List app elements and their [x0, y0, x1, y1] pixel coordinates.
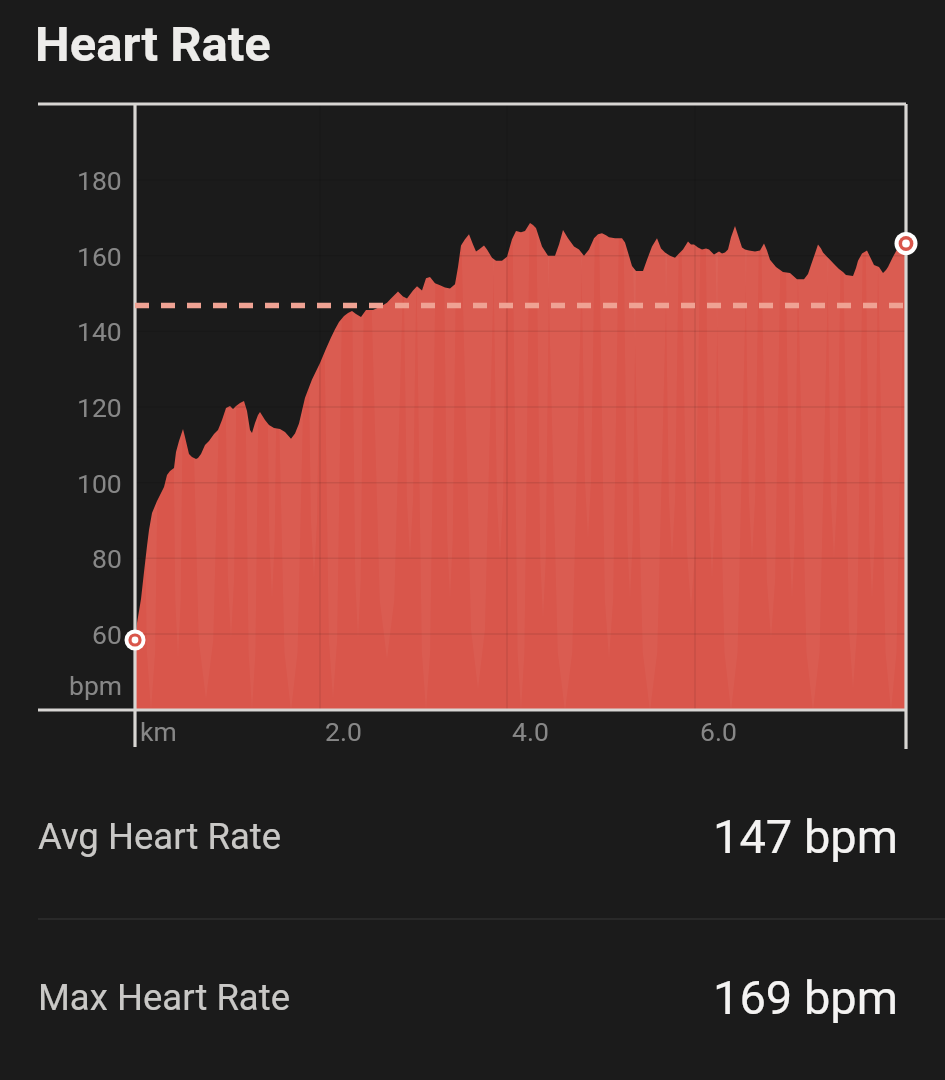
staticText: Avg Heart Rate	[38, 815, 282, 858]
staticText: 120	[77, 392, 122, 423]
staticText: 160	[77, 241, 122, 272]
button[interactable]: Max Heart Rate	[0, 959, 945, 1035]
staticText: Heart Rate	[35, 16, 271, 73]
staticText: Max Heart Rate	[38, 976, 291, 1019]
staticText: 100	[77, 468, 122, 499]
staticText: 60	[92, 619, 122, 650]
button[interactable]: Avg Heart Rate	[0, 798, 945, 874]
staticText: 6.0	[700, 716, 737, 747]
staticText: 4.0	[512, 716, 549, 747]
staticText: km	[140, 716, 177, 747]
staticText: 140	[77, 316, 122, 347]
staticText: bpm	[69, 670, 122, 701]
staticText: 80	[92, 543, 122, 574]
staticText: 180	[77, 165, 122, 196]
staticText: 169 bpm	[713, 970, 898, 1025]
staticText: 147 bpm	[713, 809, 898, 864]
staticText: 2.0	[325, 716, 362, 747]
